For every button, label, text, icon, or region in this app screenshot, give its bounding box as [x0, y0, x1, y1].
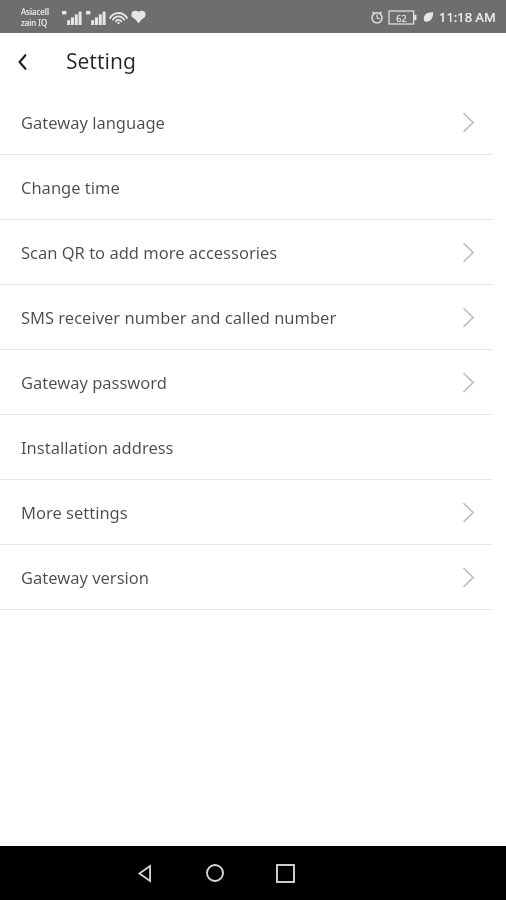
button[interactable]: Home: [180, 846, 250, 900]
staticText: Gateway language: [21, 111, 165, 133]
staticText: Gateway password: [21, 371, 167, 393]
button[interactable]: More settings: [0, 480, 506, 544]
button[interactable]: SMS receiver number and called number: [0, 285, 506, 349]
staticText: Scan QR to add more accessories: [21, 241, 278, 263]
button[interactable]: Recent apps: [250, 846, 320, 900]
staticText: Installation address: [21, 436, 174, 458]
staticText: More settings: [21, 501, 128, 523]
staticText: 11:18 AM: [439, 8, 496, 26]
button[interactable]: Change time: [0, 155, 506, 219]
staticText: Gateway version: [21, 566, 149, 588]
staticText: Change time: [21, 176, 120, 198]
button[interactable]: Gateway version: [0, 545, 506, 609]
button[interactable]: Scan QR to add more accessories: [0, 220, 506, 284]
button[interactable]: Installation address: [0, 415, 506, 479]
staticText: Setting: [66, 47, 136, 76]
button[interactable]: Back: [110, 846, 180, 900]
staticText: SMS receiver number and called number: [21, 306, 337, 328]
staticText: zain IQ: [21, 17, 48, 28]
button[interactable]: Gateway password: [0, 350, 506, 414]
button[interactable]: Back: [0, 39, 46, 85]
staticText: Asiacell: [21, 6, 49, 17]
staticText: 62: [396, 12, 407, 24]
button[interactable]: Gateway language: [0, 90, 506, 154]
